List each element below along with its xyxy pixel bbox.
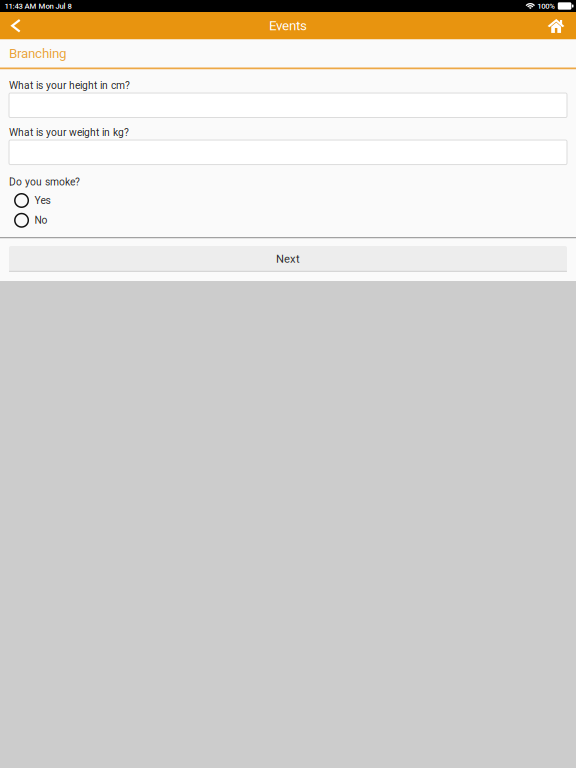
- staticText: What is your weight in kg?: [9, 126, 129, 138]
- staticText: No: [34, 214, 47, 226]
- button[interactable]: Home: [538, 14, 576, 38]
- staticText: 11:43 AM: [5, 1, 37, 11]
- staticText: Yes: [34, 194, 50, 206]
- staticText: 100%: [537, 1, 555, 11]
- button[interactable]: No: [9, 210, 567, 230]
- staticText: Events: [269, 18, 307, 33]
- button[interactable]: Next: [0, 238, 576, 281]
- staticText: Next: [276, 252, 300, 265]
- staticText: Do you smoke?: [9, 176, 80, 188]
- button[interactable]: Yes: [9, 191, 567, 210]
- staticText: What is your height in cm?: [9, 79, 130, 91]
- staticText: Mon Jul 8: [39, 1, 72, 11]
- button[interactable]: Back: [0, 15, 32, 36]
- staticText: Branching: [9, 46, 66, 61]
